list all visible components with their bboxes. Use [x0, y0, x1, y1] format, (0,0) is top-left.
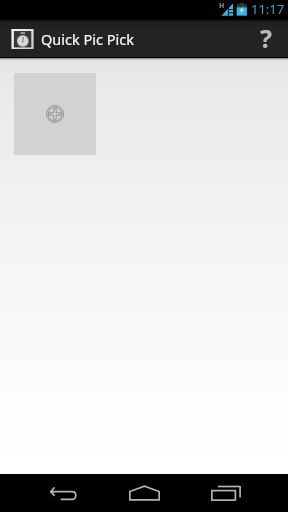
- button[interactable]: Help: [244, 20, 288, 57]
- button[interactable]: Recent apps: [185, 474, 266, 512]
- staticText: Quick Pic Pick: [41, 29, 134, 49]
- button[interactable]: Home: [104, 474, 185, 512]
- button[interactable]: Back: [23, 474, 104, 512]
- staticText: ?: [260, 21, 272, 55]
- staticText: H: [219, 1, 225, 11]
- button[interactable]: Quick Pic Pick: [0, 20, 138, 57]
- button[interactable]: [14, 73, 96, 155]
- staticText: 11:17: [251, 0, 285, 18]
